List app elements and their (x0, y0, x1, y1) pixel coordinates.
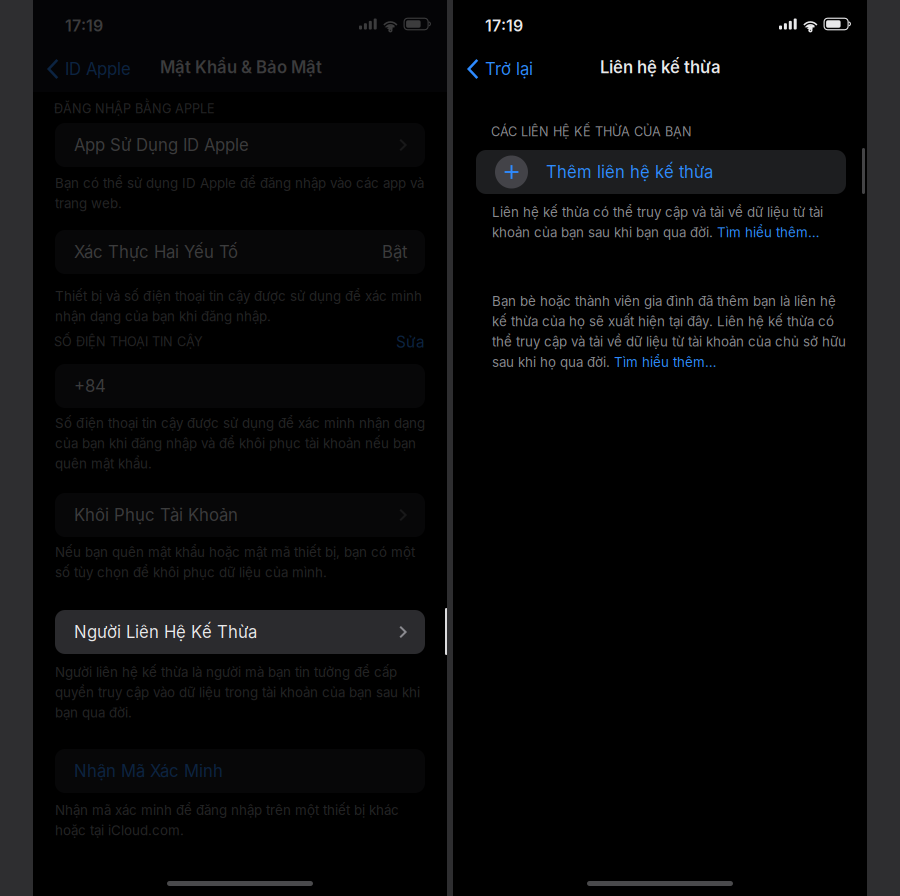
button[interactable]: Trở lại (453, 47, 603, 91)
staticText: 17:19 (485, 16, 523, 35)
staticText: Nhận Mã Xác Minh (74, 761, 223, 781)
staticText: CÁC LIÊN HỆ KẾ THỪA CỦA BẠN (491, 124, 692, 139)
staticText: +84 (74, 376, 106, 396)
button[interactable]: App Sử Dụng ID Apple (55, 123, 425, 167)
staticText: Bạn có thể sử dụng ID Apple để đăng nhập… (55, 175, 424, 211)
button[interactable]: Xác Thực Hai Yếu Tố (55, 230, 425, 274)
staticText: Số điện thoại tin cậy được sử dụng để xá… (55, 415, 425, 472)
staticText: ID Apple (65, 59, 131, 79)
staticText: Người liên hệ kế thừa là người mà bạn ti… (55, 664, 420, 721)
button[interactable]: ID Apple (33, 47, 183, 91)
staticText: ĐĂNG NHẬP BẰNG APPLE (54, 101, 215, 116)
staticText: Thêm liên hệ kế thừa (546, 162, 713, 182)
staticText: Trở lại (485, 59, 533, 79)
staticText: Xác Thực Hai Yếu Tố (74, 242, 238, 262)
staticText: Thiết bị và số điện thoại tin cậy được s… (55, 288, 422, 324)
button[interactable]: Nhận Mã Xác Minh (55, 749, 425, 793)
staticText: Sửa (396, 333, 425, 351)
button[interactable]: Thêm liên hệ kế thừa (476, 150, 846, 194)
staticText: Bật (382, 242, 407, 262)
button[interactable]: +84 (55, 364, 425, 408)
staticText: App Sử Dụng ID Apple (74, 135, 249, 155)
staticText: Nếu bạn quên mật khẩu hoặc mật mã thiết … (55, 544, 415, 580)
staticText: Liên hệ kế thừa (600, 57, 721, 77)
staticText: Người Liên Hệ Kế Thừa (74, 622, 257, 642)
staticText: Nhận mã xác minh để đăng nhập trên một t… (55, 802, 399, 838)
button[interactable]: Người Liên Hệ Kế Thừa (55, 610, 425, 654)
staticText: Liên hệ kế thừa có thể truy cập và tải v… (492, 204, 823, 240)
staticText: SỐ ĐIỆN THOẠI TIN CẬY (54, 334, 203, 349)
staticText: Bạn bè hoặc thành viên gia đình đã thêm … (492, 293, 846, 370)
staticText: Mật Khẩu & Bảo Mật (160, 57, 322, 77)
button[interactable]: Khôi Phục Tài Khoản (55, 493, 425, 537)
staticText: Khôi Phục Tài Khoản (74, 505, 238, 525)
staticText: 17:19 (65, 16, 103, 35)
button[interactable]: Sửa (365, 331, 425, 353)
